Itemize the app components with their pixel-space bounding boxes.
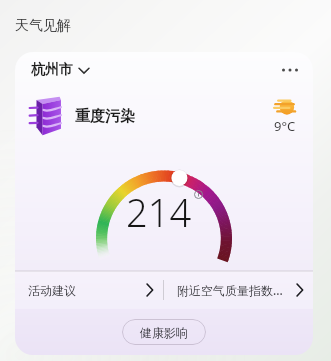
button[interactable]: More options — [277, 57, 303, 83]
button[interactable]: 杭州市 — [29, 59, 91, 81]
staticText: 活动建议 — [28, 283, 76, 298]
staticText: 附近空气质量指数... — [177, 282, 283, 298]
button[interactable]: 健康影响 — [122, 319, 206, 345]
button[interactable]: 附近空气质量指数... — [164, 271, 313, 309]
button[interactable]: 活动建议 — [15, 271, 163, 309]
staticText: 健康影响 — [140, 325, 188, 340]
staticText: 杭州市 — [31, 61, 73, 79]
staticText: 214 — [126, 186, 192, 238]
staticText: 重度污染 — [75, 107, 135, 126]
staticText: 9°C — [274, 117, 296, 135]
staticText: 天气见解 — [15, 17, 71, 35]
